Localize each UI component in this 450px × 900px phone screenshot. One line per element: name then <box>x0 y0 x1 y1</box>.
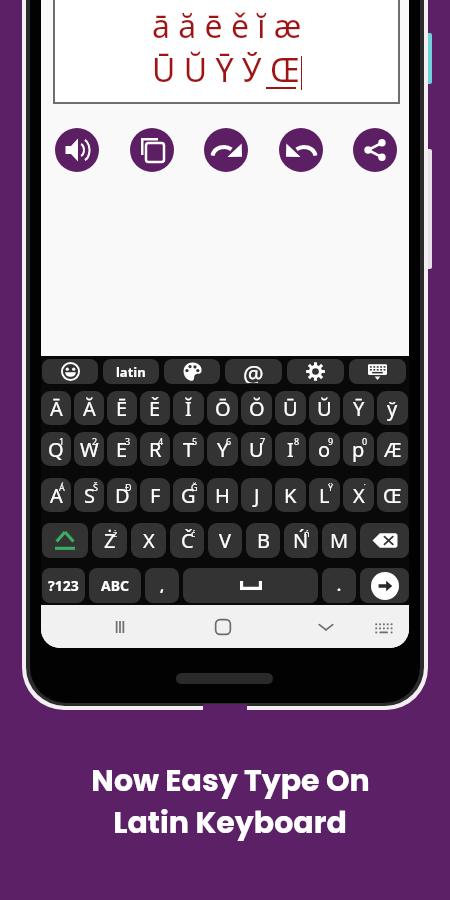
button[interactable]: Redo <box>204 128 248 172</box>
button[interactable]: Œ <box>377 478 408 512</box>
button[interactable]: Theme <box>164 359 220 384</box>
button[interactable]: Ō <box>207 391 238 425</box>
staticText: 6 <box>226 435 232 447</box>
button[interactable]: Keyboard <box>365 609 401 645</box>
button[interactable]: Ě <box>140 391 170 425</box>
button[interactable]: X <box>343 478 374 512</box>
button[interactable]: Ū <box>275 391 306 425</box>
button[interactable]: Ā <box>41 391 71 425</box>
button[interactable]: . <box>322 568 356 603</box>
button[interactable]: R <box>140 432 170 466</box>
staticText: p <box>352 436 365 463</box>
button[interactable]: Ȳ <box>343 391 374 425</box>
staticText: Ā <box>50 395 63 422</box>
button[interactable]: Hide keyboard <box>349 359 406 384</box>
staticText: M <box>330 527 349 554</box>
staticText: I <box>287 436 294 463</box>
button[interactable]: U <box>241 432 272 466</box>
button[interactable]: Ŭ <box>309 391 340 425</box>
staticText: Ȳ <box>353 395 365 422</box>
staticText: 8 <box>294 435 300 447</box>
staticText: E <box>116 436 128 463</box>
button[interactable]: Q <box>41 432 71 466</box>
staticText: Œ <box>270 48 300 92</box>
staticText: 2 <box>92 435 98 447</box>
button[interactable]: Ē <box>107 391 137 425</box>
button[interactable]: Ń <box>284 523 318 558</box>
button[interactable]: Ă <box>74 391 104 425</box>
staticText: V <box>219 527 231 554</box>
button[interactable]: Space <box>183 568 318 603</box>
button[interactable]: F <box>140 478 170 512</box>
button[interactable]: o <box>309 432 340 466</box>
button[interactable]: Hide keyboard <box>308 609 344 645</box>
staticText: Č <box>181 527 194 554</box>
staticText: ń <box>304 527 310 539</box>
button[interactable]: X <box>131 523 166 558</box>
staticText: 1 <box>59 435 65 447</box>
staticText: ż <box>113 527 118 539</box>
staticText: G <box>181 482 196 509</box>
staticText: X <box>353 482 365 509</box>
staticText: Ÿ <box>328 481 334 493</box>
staticText: 9 <box>328 435 334 447</box>
staticText: Ż <box>104 527 116 554</box>
button[interactable]: J <box>241 478 272 512</box>
button[interactable]: G <box>173 478 204 512</box>
button[interactable]: Enter <box>360 568 409 603</box>
button[interactable]: ў <box>377 391 408 425</box>
staticText: Ð <box>125 481 132 493</box>
button[interactable]: E <box>107 432 137 466</box>
button[interactable]: A <box>41 478 71 512</box>
staticText: 4 <box>158 435 164 447</box>
button[interactable]: Speak <box>55 128 99 172</box>
button[interactable]: Share <box>353 128 397 172</box>
button[interactable]: I <box>275 432 306 466</box>
button[interactable]: Ŏ <box>241 391 272 425</box>
button[interactable]: B <box>246 523 280 558</box>
button[interactable]: ?123 <box>42 568 85 603</box>
staticText: 3 <box>125 435 131 447</box>
staticText: U <box>249 436 264 463</box>
button[interactable]: ABC <box>89 568 141 603</box>
button[interactable]: Email <box>225 359 282 384</box>
button[interactable]: Æ <box>377 432 408 466</box>
button[interactable]: Emoji <box>42 359 98 384</box>
staticText: A <box>50 482 63 509</box>
button[interactable]: K <box>275 478 306 512</box>
button[interactable]: Shift <box>42 523 88 558</box>
button[interactable]: H <box>207 478 238 512</box>
staticText: Ŏ <box>249 395 265 422</box>
staticText: ABC <box>101 576 129 595</box>
button[interactable]: Copy <box>130 128 174 172</box>
button[interactable]: M <box>322 523 356 558</box>
button[interactable]: Settings <box>287 359 344 384</box>
button[interactable]: Y <box>207 432 238 466</box>
staticText: H <box>215 482 230 509</box>
staticText: . <box>337 576 341 595</box>
button[interactable]: S <box>74 478 104 512</box>
button[interactable]: W <box>74 432 104 466</box>
button[interactable]: p <box>343 432 374 466</box>
button[interactable]: D <box>107 478 137 512</box>
staticText: Ğ <box>191 481 198 493</box>
button[interactable]: L <box>309 478 340 512</box>
button[interactable]: T <box>173 432 204 466</box>
button[interactable]: latin <box>103 359 159 384</box>
button[interactable]: Recents <box>102 609 138 645</box>
button[interactable]: V <box>208 523 242 558</box>
button[interactable]: Undo <box>279 128 323 172</box>
button[interactable]: Č <box>170 523 204 558</box>
button[interactable]: , <box>145 568 179 603</box>
staticText: B <box>257 527 270 554</box>
button[interactable]: Ĭ <box>173 391 204 425</box>
staticText: Ă <box>83 395 96 422</box>
staticText: T <box>183 436 195 463</box>
staticText: Ū <box>283 395 298 422</box>
staticText: Ě <box>149 395 161 422</box>
button[interactable]: Backspace <box>360 523 409 558</box>
staticText: J <box>254 482 260 509</box>
button[interactable]: Ż <box>92 523 127 558</box>
staticText: Q <box>48 436 64 463</box>
button[interactable]: Home <box>205 609 241 645</box>
